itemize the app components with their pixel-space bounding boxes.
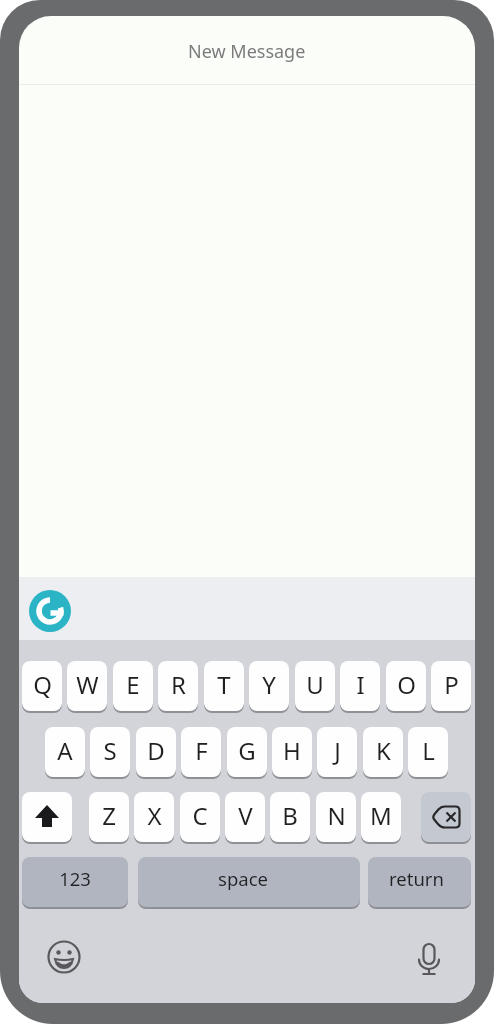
- button[interactable]: return: [368, 857, 471, 907]
- button[interactable]: U: [295, 661, 335, 711]
- staticText: G: [238, 734, 256, 767]
- staticText: U: [306, 668, 324, 701]
- button[interactable]: B: [270, 792, 310, 842]
- button[interactable]: N: [316, 792, 356, 842]
- button[interactable]: I: [340, 661, 380, 711]
- button[interactable]: F: [181, 727, 221, 777]
- staticText: space: [218, 866, 268, 891]
- staticText: B: [282, 799, 298, 832]
- button[interactable]: Z: [89, 792, 129, 842]
- staticText: New Message: [188, 39, 306, 64]
- button[interactable]: space: [138, 857, 360, 907]
- button[interactable]: P: [431, 661, 471, 711]
- button[interactable]: [22, 792, 72, 842]
- button[interactable]: G: [227, 727, 267, 777]
- staticText: X: [147, 799, 162, 832]
- button[interactable]: R: [158, 661, 198, 711]
- button[interactable]: A: [45, 727, 85, 777]
- button[interactable]: 123: [22, 857, 128, 907]
- button[interactable]: Y: [249, 661, 289, 711]
- staticText: P: [444, 668, 459, 701]
- staticText: C: [192, 799, 208, 832]
- button[interactable]: [409, 937, 449, 977]
- staticText: N: [327, 799, 346, 832]
- staticText: Z: [102, 799, 116, 832]
- button[interactable]: V: [225, 792, 265, 842]
- button[interactable]: S: [90, 727, 130, 777]
- staticText: V: [238, 799, 253, 832]
- button[interactable]: T: [204, 661, 244, 711]
- staticText: F: [195, 734, 208, 767]
- button[interactable]: J: [317, 727, 357, 777]
- button[interactable]: W: [67, 661, 107, 711]
- staticText: T: [217, 668, 231, 701]
- staticText: M: [370, 799, 392, 832]
- staticText: H: [283, 734, 301, 767]
- staticText: K: [376, 734, 391, 767]
- staticText: R: [171, 668, 186, 701]
- button[interactable]: M: [361, 792, 401, 842]
- button[interactable]: [44, 937, 84, 977]
- staticText: W: [76, 668, 99, 701]
- staticText: D: [147, 734, 165, 767]
- staticText: Y: [262, 668, 276, 701]
- button[interactable]: [29, 590, 71, 632]
- staticText: J: [334, 734, 341, 767]
- staticText: O: [397, 668, 416, 701]
- staticText: 123: [59, 866, 91, 891]
- staticText: I: [356, 668, 365, 701]
- button[interactable]: K: [363, 727, 403, 777]
- staticText: Q: [33, 668, 52, 701]
- button[interactable]: H: [272, 727, 312, 777]
- button[interactable]: [421, 792, 471, 842]
- button[interactable]: D: [136, 727, 176, 777]
- button[interactable]: C: [180, 792, 220, 842]
- staticText: return: [389, 866, 444, 891]
- staticText: S: [103, 734, 117, 767]
- button[interactable]: E: [113, 661, 153, 711]
- staticText: E: [126, 668, 140, 701]
- button[interactable]: Q: [22, 661, 62, 711]
- staticText: A: [57, 734, 73, 767]
- button[interactable]: L: [408, 727, 448, 777]
- staticText: L: [422, 734, 435, 767]
- button[interactable]: O: [386, 661, 426, 711]
- button[interactable]: X: [134, 792, 174, 842]
